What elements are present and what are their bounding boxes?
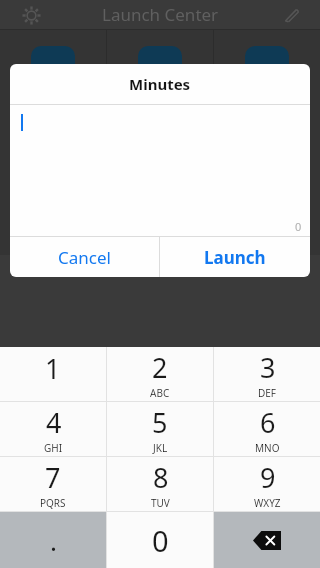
button[interactable]: Settings: [18, 2, 44, 28]
staticText: GHI: [44, 441, 63, 455]
staticText: 4: [46, 404, 62, 441]
button[interactable]: [107, 30, 213, 105]
button[interactable]: [214, 30, 320, 105]
staticText: Cancel: [58, 246, 111, 269]
button[interactable]: [214, 105, 320, 180]
button[interactable]: 8: [107, 457, 213, 511]
button[interactable]: 0: [107, 512, 213, 568]
staticText: .: [50, 523, 57, 558]
button[interactable]: 3: [214, 347, 320, 401]
staticText: WXYZ: [254, 496, 281, 510]
button[interactable]: Backspace: [214, 512, 320, 568]
staticText: 0: [295, 219, 302, 234]
button[interactable]: [0, 30, 106, 105]
staticText: ABC: [150, 386, 170, 400]
button[interactable]: Edit: [278, 2, 304, 28]
staticText: JKL: [153, 441, 168, 455]
staticText: 8: [153, 459, 169, 496]
button[interactable]: Set Timer: [107, 180, 213, 255]
button[interactable]: Contacts: [0, 180, 106, 255]
staticText: 0: [152, 521, 169, 560]
button[interactable]: Search: [214, 180, 320, 255]
staticText: Launch: [204, 246, 266, 269]
staticText: 2: [152, 349, 168, 386]
staticText: MNO: [255, 441, 280, 455]
staticText: Contacts: [28, 235, 78, 251]
staticText: 7: [45, 459, 61, 496]
staticText: TUV: [151, 496, 170, 510]
button[interactable]: 1: [0, 347, 106, 401]
staticText: 3: [260, 349, 276, 386]
staticText: Launch Center: [102, 3, 219, 26]
staticText: PQRS: [40, 496, 66, 510]
button[interactable]: 7: [0, 457, 106, 511]
staticText: 1: [45, 350, 61, 387]
staticText: 6: [260, 404, 276, 441]
button[interactable]: 5: [107, 402, 213, 456]
button[interactable]: 4: [0, 402, 106, 456]
button[interactable]: Cancel: [10, 237, 159, 277]
button[interactable]: Launch: [160, 237, 310, 277]
button[interactable]: 6: [214, 402, 320, 456]
button[interactable]: 9: [214, 457, 320, 511]
button[interactable]: 2: [107, 347, 213, 401]
button[interactable]: .: [0, 512, 106, 568]
staticText: Set Timer: [133, 235, 187, 251]
staticText: Minutes: [129, 74, 191, 94]
button[interactable]: [0, 105, 106, 180]
staticText: 5: [152, 404, 168, 441]
staticText: Search: [248, 235, 286, 251]
staticText: 9: [260, 459, 276, 496]
staticText: DEF: [258, 386, 277, 400]
